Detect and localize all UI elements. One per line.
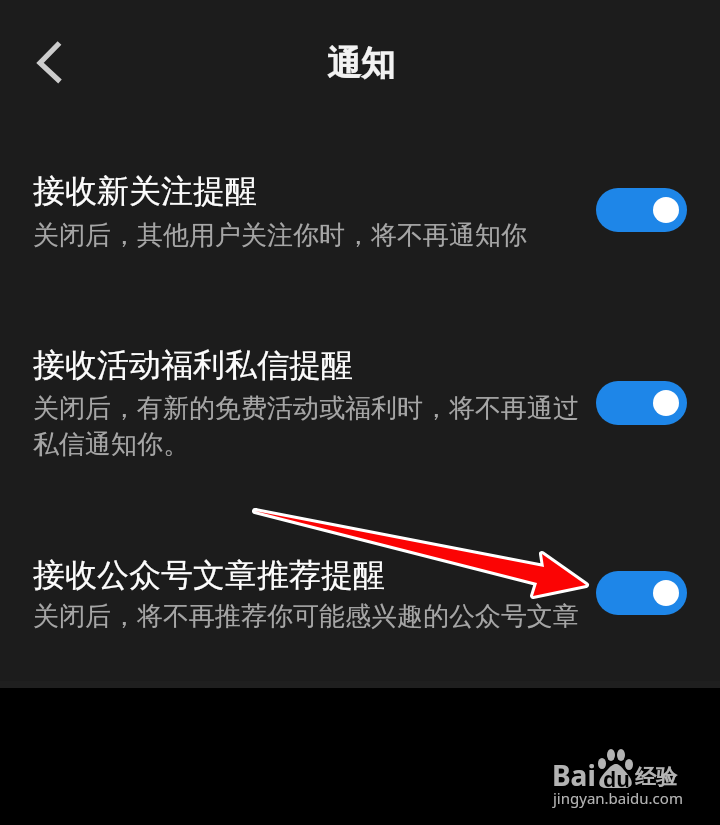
staticText: 接收公众号文章推荐提醒: [33, 555, 385, 595]
staticText: 关闭后，有新的免费活动或福利时，将不再通过私信通知你。: [33, 392, 579, 461]
button[interactable]: 接收公众号文章推荐提醒 开关，已开启: [596, 571, 687, 615]
button[interactable]: 接收公众号文章推荐提醒: [0, 525, 720, 660]
button[interactable]: 接收新关注提醒: [0, 140, 720, 275]
staticText: 经验: [635, 764, 677, 790]
button[interactable]: 接收活动福利私信提醒: [0, 315, 720, 485]
button[interactable]: 接收新关注提醒 开关，已开启: [596, 188, 687, 232]
staticText: jingyan.baidu.com: [553, 788, 683, 808]
staticText: 关闭后，将不再推荐你可能感兴趣的公众号文章: [33, 600, 579, 633]
button[interactable]: Back: [21, 30, 77, 86]
staticText: du: [603, 765, 630, 794]
staticText: Bai: [552, 756, 596, 794]
button[interactable]: 接收活动福利私信提醒 开关，已开启: [596, 381, 687, 425]
staticText: 通知: [327, 42, 395, 85]
staticText: 接收活动福利私信提醒: [33, 345, 353, 385]
staticText: 接收新关注提醒: [33, 171, 257, 211]
staticText: 关闭后，其他用户关注你时，将不再通知你: [33, 219, 527, 252]
